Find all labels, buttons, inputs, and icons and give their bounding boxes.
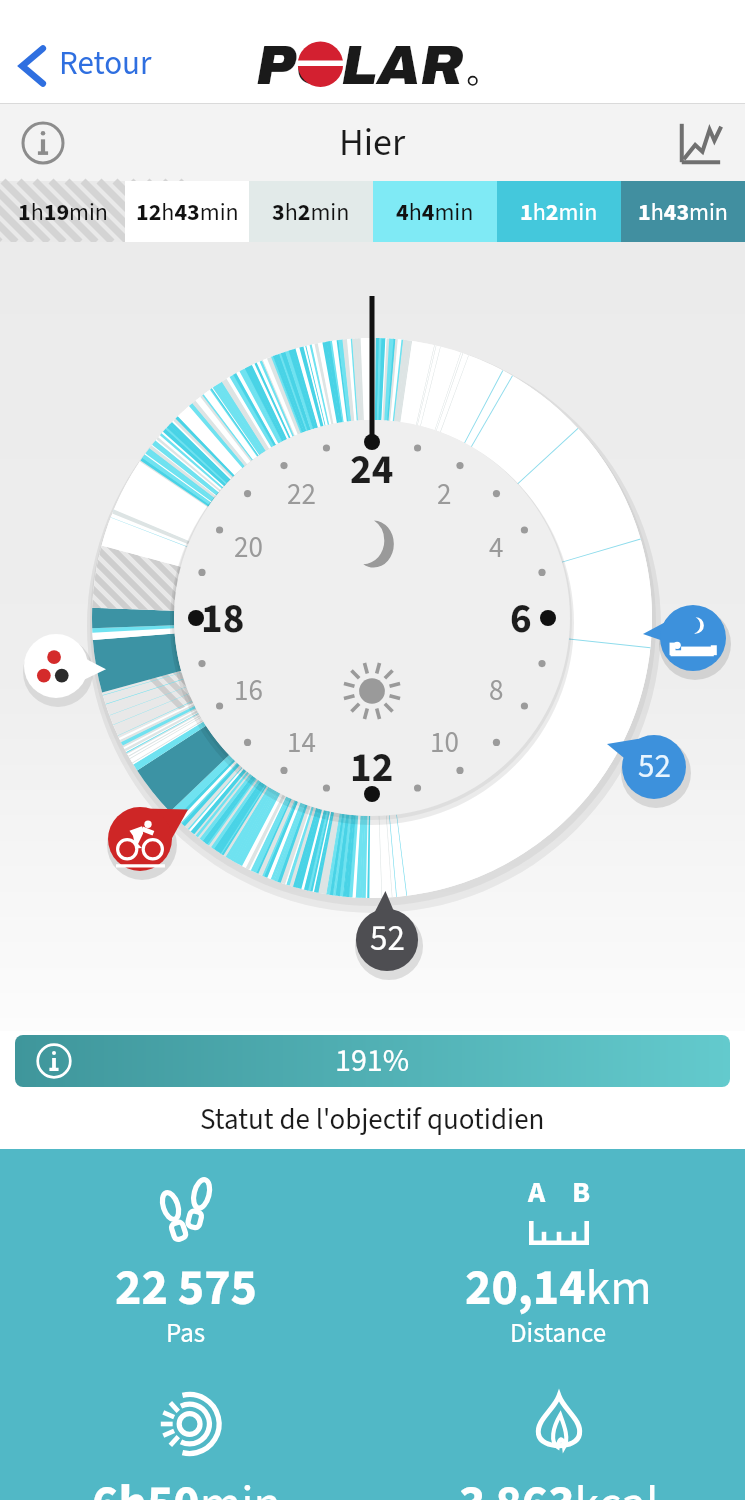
button[interactable]: 6h50min xyxy=(0,1365,372,1500)
button[interactable]: Graphiques xyxy=(673,116,727,170)
button[interactable]: 3h2min xyxy=(249,181,373,242)
staticText: 20 xyxy=(234,527,263,568)
staticText: 6 xyxy=(510,590,532,646)
button[interactable]: 3 863kcal xyxy=(372,1365,745,1500)
button[interactable]: 191% xyxy=(15,1035,730,1087)
button[interactable]: Retour xyxy=(14,42,152,89)
staticText: 18 xyxy=(201,590,245,646)
button[interactable]: 12h43min xyxy=(125,181,249,242)
staticText: 191% xyxy=(335,1038,410,1084)
staticText: Distance xyxy=(510,1314,607,1352)
staticText: 4h4min xyxy=(396,195,474,229)
staticText: 3h2min xyxy=(272,195,350,229)
button[interactable]: 1h2min xyxy=(497,181,621,242)
button[interactable]: Sommeil xyxy=(651,596,735,680)
staticText: 8 xyxy=(489,670,504,711)
button[interactable]: 22 575 xyxy=(0,1149,372,1365)
staticText: 2 xyxy=(437,474,452,515)
staticText: 52 xyxy=(638,743,671,790)
staticText: 20,14km xyxy=(465,1253,652,1324)
staticText: 1h43min xyxy=(638,195,728,229)
staticText: 10 xyxy=(430,722,459,763)
staticText: A xyxy=(528,1171,546,1214)
button[interactable]: Information xyxy=(16,116,70,170)
staticText: 22 xyxy=(287,474,316,515)
staticText: Statut de l'objectif quotidien xyxy=(200,1099,545,1140)
staticText: 1h19min xyxy=(18,195,108,229)
button[interactable]: 52 xyxy=(613,726,695,808)
staticText: 52 xyxy=(370,914,405,964)
staticText: Hier xyxy=(339,116,406,170)
staticText: 16 xyxy=(234,670,263,711)
staticText: POLAR xyxy=(256,36,463,92)
staticText: 12h43min xyxy=(136,195,239,229)
staticText: 1h2min xyxy=(520,195,598,229)
staticText: 12 xyxy=(350,739,394,795)
staticText: 14 xyxy=(287,722,316,763)
staticText: B xyxy=(572,1171,591,1214)
staticText: 6h50min xyxy=(92,1469,281,1500)
staticText: 22 575 xyxy=(115,1253,257,1324)
button[interactable]: A xyxy=(372,1149,745,1365)
button[interactable]: 1h43min xyxy=(621,181,745,242)
staticText: 24 xyxy=(350,441,394,497)
button[interactable]: 52 xyxy=(347,900,427,980)
button[interactable]: 4h4min xyxy=(373,181,497,242)
staticText: 4 xyxy=(489,527,504,568)
button[interactable]: Cyclisme xyxy=(99,798,181,880)
button[interactable]: Activités xyxy=(15,625,97,707)
staticText: Pas xyxy=(166,1314,206,1352)
button[interactable]: 1h19min xyxy=(0,181,125,242)
staticText: Retour xyxy=(59,40,152,87)
staticText: 3 863kcal xyxy=(459,1469,659,1500)
